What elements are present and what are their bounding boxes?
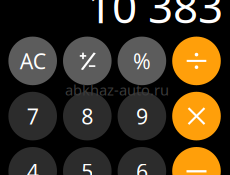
button[interactable]: 5: [63, 147, 112, 175]
staticText: 4: [27, 157, 39, 175]
staticText: 7: [27, 102, 39, 130]
button[interactable]: 9: [118, 92, 166, 140]
staticText: 9: [136, 102, 148, 130]
staticText: 6: [136, 157, 148, 175]
button[interactable]: AC: [8, 37, 57, 85]
button[interactable]: Multiply: [172, 92, 221, 140]
button[interactable]: Minus: [172, 147, 221, 175]
button[interactable]: 7: [8, 92, 57, 140]
staticText: 5: [81, 157, 93, 175]
button[interactable]: 6: [118, 147, 166, 175]
staticText: 8: [81, 102, 93, 130]
button[interactable]: 8: [63, 92, 112, 140]
button[interactable]: Divide: [172, 37, 221, 85]
staticText: AC: [20, 47, 46, 75]
staticText: abkhaz-auto.ru: [65, 80, 169, 99]
button[interactable]: Plus minus: [63, 37, 112, 85]
staticText: %: [133, 47, 151, 75]
button[interactable]: 4: [8, 147, 57, 175]
button[interactable]: %: [118, 37, 166, 85]
staticText: 10 383: [87, 0, 223, 35]
